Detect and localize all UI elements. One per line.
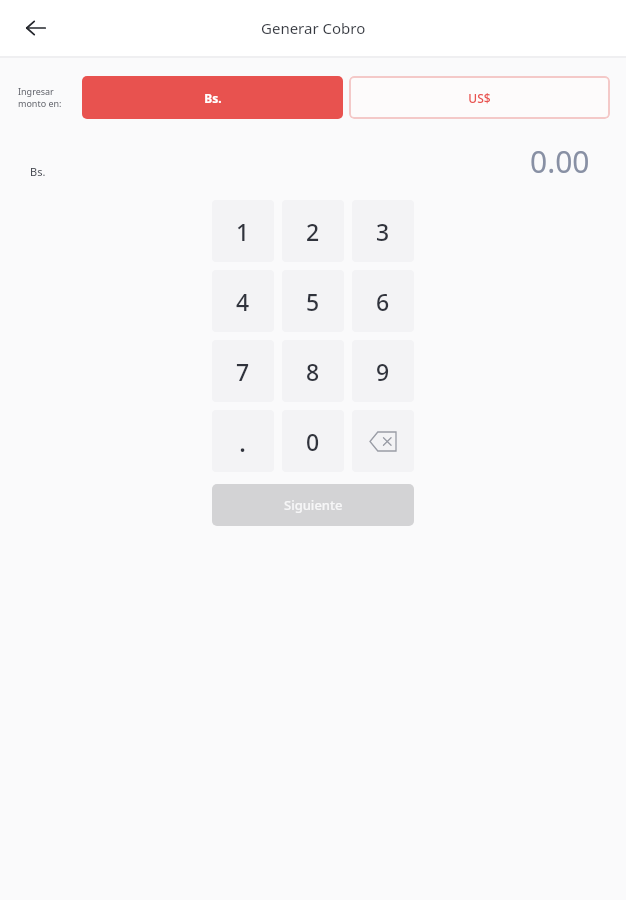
button[interactable]: US$ [349, 76, 610, 119]
button[interactable]: 8 [282, 340, 344, 402]
staticText: Generar Cobro [261, 18, 366, 38]
staticText: Bs. [204, 90, 222, 106]
button[interactable]: Backspace [352, 410, 414, 472]
staticText: Bs. [30, 164, 46, 179]
button[interactable]: 5 [282, 270, 344, 332]
staticText: US$ [468, 90, 491, 106]
staticText: Ingresar monto en: [18, 85, 72, 110]
button[interactable]: 0 [282, 410, 344, 472]
button[interactable]: Back [14, 6, 58, 50]
button[interactable]: Bs. [82, 76, 343, 119]
button[interactable]: 3 [352, 200, 414, 262]
staticText: 5 [306, 286, 320, 317]
button[interactable]: 6 [352, 270, 414, 332]
staticText: 3 [376, 216, 390, 247]
button[interactable]: 1 [212, 200, 274, 262]
button[interactable]: Siguiente [212, 484, 414, 526]
staticText: 4 [236, 286, 250, 317]
button[interactable]: 4 [212, 270, 274, 332]
staticText: . [239, 424, 247, 459]
staticText: 9 [376, 356, 390, 387]
button[interactable]: 2 [282, 200, 344, 262]
staticText: 8 [306, 356, 320, 387]
button[interactable]: 9 [352, 340, 414, 402]
staticText: 2 [306, 216, 320, 247]
staticText: 0.00 [530, 141, 590, 182]
button[interactable]: 7 [212, 340, 274, 402]
staticText: 1 [236, 216, 250, 247]
staticText: 7 [236, 356, 250, 387]
button[interactable]: . [212, 410, 274, 472]
staticText: 6 [376, 286, 390, 317]
staticText: Siguiente [284, 496, 343, 514]
staticText: 0 [306, 426, 320, 457]
